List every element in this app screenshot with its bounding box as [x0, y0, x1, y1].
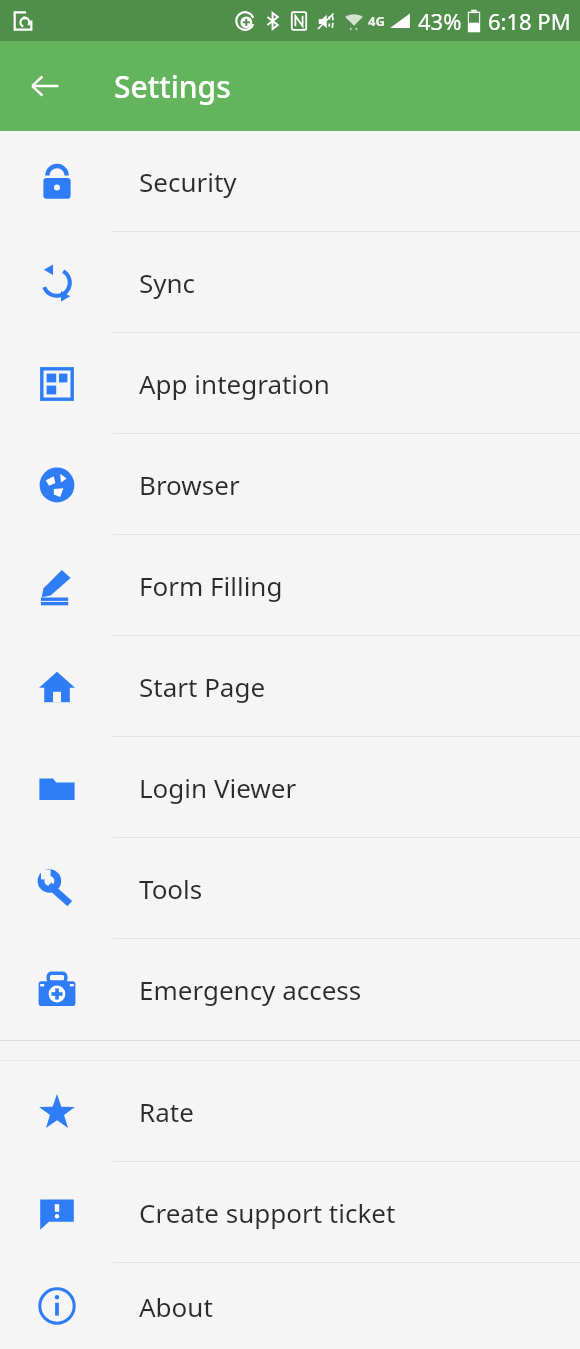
- staticText: Form Filling: [139, 568, 283, 603]
- staticText: About: [139, 1289, 213, 1324]
- button[interactable]: Create support ticket: [0, 1162, 580, 1263]
- staticText: App integration: [139, 366, 330, 401]
- button[interactable]: Form Filling: [0, 535, 580, 636]
- staticText: Create support ticket: [139, 1195, 396, 1230]
- staticText: Tools: [139, 871, 203, 906]
- staticText: Rate: [139, 1094, 194, 1129]
- button[interactable]: Rate: [0, 1061, 580, 1162]
- button[interactable]: Login Viewer: [0, 737, 580, 838]
- button[interactable]: Back: [14, 55, 76, 117]
- button[interactable]: Security: [0, 131, 580, 232]
- staticText: Sync: [139, 265, 196, 300]
- staticText: Start Page: [139, 669, 266, 704]
- staticText: Browser: [139, 467, 240, 502]
- staticText: 43%: [418, 6, 462, 36]
- button[interactable]: Emergency access: [0, 939, 580, 1040]
- button[interactable]: App integration: [0, 333, 580, 434]
- button[interactable]: Sync: [0, 232, 580, 333]
- staticText: Emergency access: [139, 972, 362, 1007]
- button[interactable]: Tools: [0, 838, 580, 939]
- staticText: 6:18 PM: [488, 6, 571, 36]
- staticText: 4G: [368, 12, 385, 30]
- staticText: Security: [139, 164, 237, 199]
- button[interactable]: Browser: [0, 434, 580, 535]
- staticText: Login Viewer: [139, 770, 297, 805]
- button[interactable]: About: [0, 1263, 580, 1349]
- button[interactable]: Start Page: [0, 636, 580, 737]
- staticText: Settings: [114, 66, 231, 107]
